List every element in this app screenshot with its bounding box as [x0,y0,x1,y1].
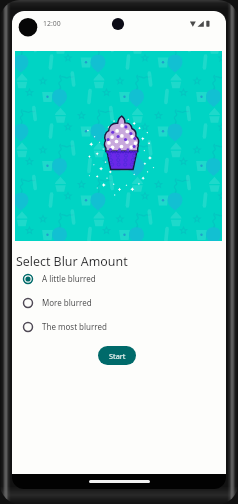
staticText: A little blurred [42,273,96,284]
button[interactable]: The most blurred [12,315,226,338]
button[interactable]: A little blurred [12,267,226,290]
staticText: 12:00 [43,19,61,28]
button[interactable]: Start [98,346,136,365]
button[interactable]: More blurred [12,291,226,314]
staticText: Select Blur Amount [16,253,128,270]
staticText: Start [109,351,126,361]
staticText: The most blurred [42,321,107,332]
staticText: More blurred [42,297,92,308]
